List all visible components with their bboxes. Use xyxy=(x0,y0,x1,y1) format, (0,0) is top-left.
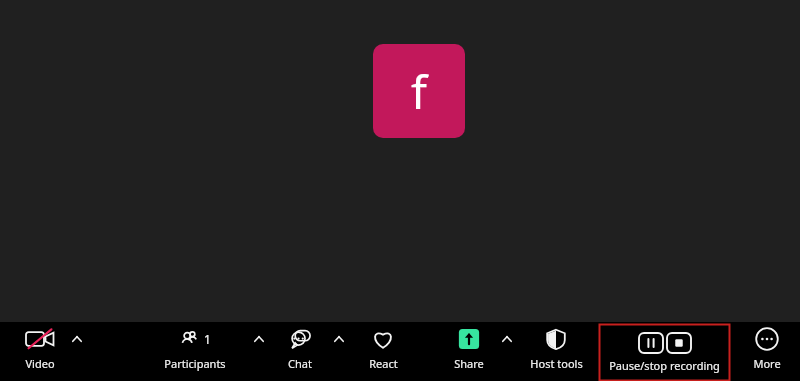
other: React xyxy=(371,328,395,350)
staticText: Video xyxy=(25,356,55,371)
staticText: Chat xyxy=(288,356,312,371)
button[interactable]: Share xyxy=(436,326,502,380)
button[interactable]: More options xyxy=(68,330,86,348)
other: Host tools xyxy=(545,328,567,350)
button[interactable]: More options xyxy=(250,330,268,348)
staticText: Host tools xyxy=(530,356,583,371)
other: Participants xyxy=(180,329,200,349)
staticText: More xyxy=(753,356,781,371)
button[interactable]: Chat xyxy=(268,326,332,380)
button[interactable]: f xyxy=(373,44,465,138)
staticText: Participants xyxy=(164,356,226,371)
button[interactable]: More xyxy=(736,326,798,380)
button[interactable]: More options xyxy=(498,330,516,348)
button[interactable]: React xyxy=(350,326,416,380)
other: Video off xyxy=(25,328,55,350)
staticText: 1 xyxy=(204,331,210,347)
staticText: React xyxy=(369,356,398,371)
other: Chat xyxy=(288,328,312,350)
button[interactable]: More options xyxy=(330,330,348,348)
other: More xyxy=(755,327,779,351)
staticText: Share xyxy=(454,356,484,371)
button[interactable]: Pause/stop recording xyxy=(599,324,730,381)
staticText: f xyxy=(411,60,427,123)
button[interactable]: Participants xyxy=(150,326,240,380)
staticText: Pause/stop recording xyxy=(609,358,720,373)
button[interactable]: Video off xyxy=(6,326,74,380)
button[interactable]: Host tools xyxy=(516,326,596,380)
other: Share xyxy=(457,328,481,350)
